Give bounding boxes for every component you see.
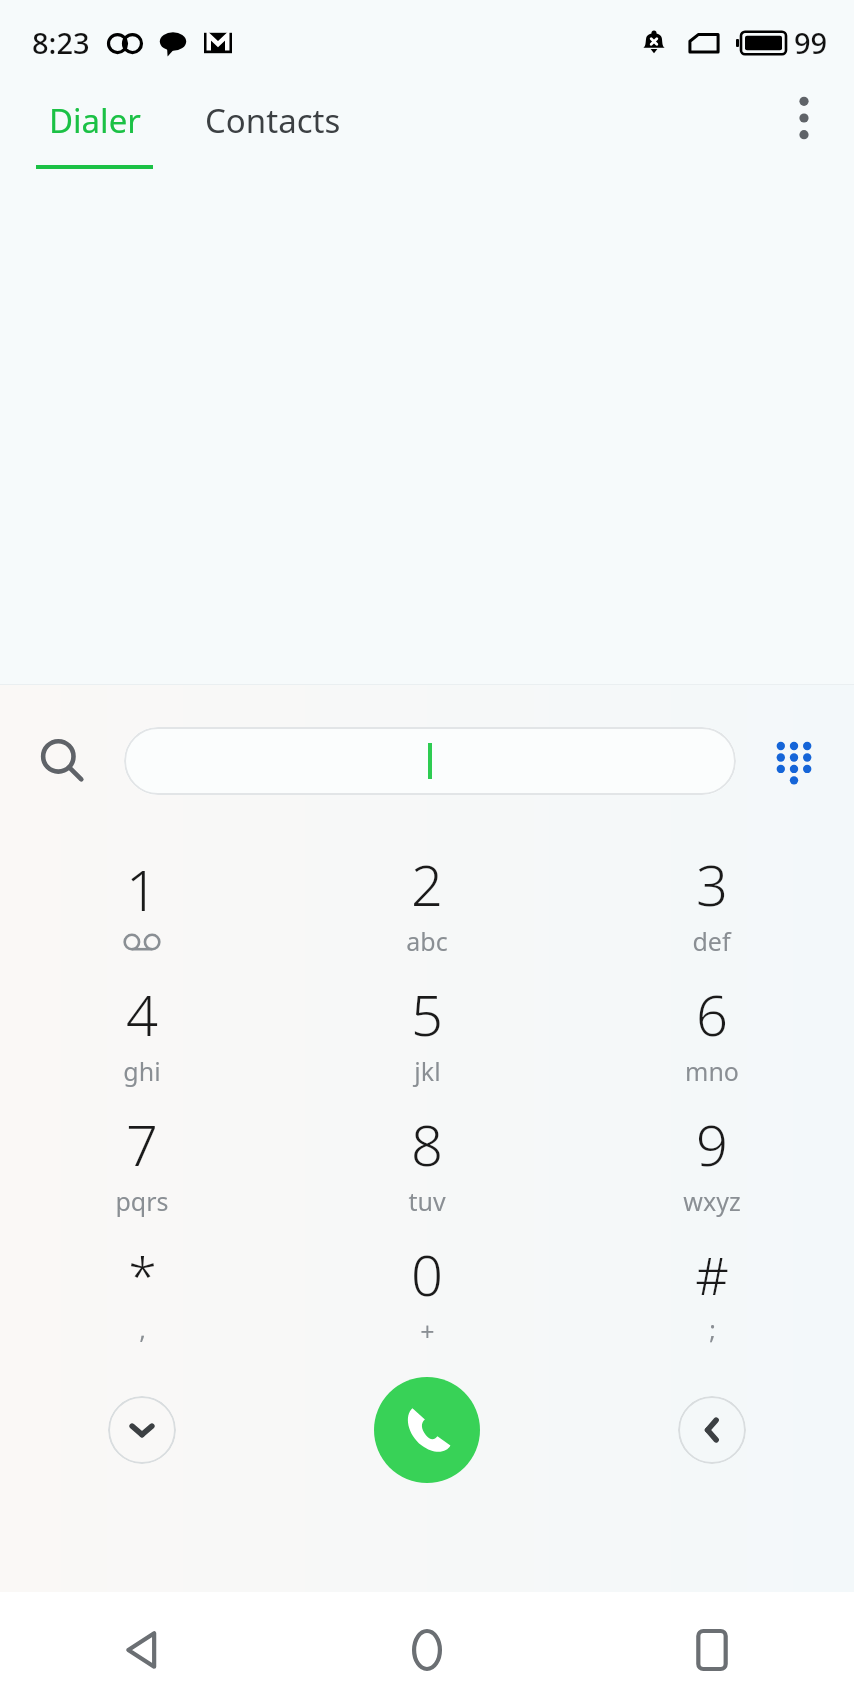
staticText: 0 — [411, 1236, 443, 1312]
button[interactable]: Home — [382, 1605, 472, 1695]
staticText: wxyz — [683, 1184, 741, 1218]
staticText: 4 — [126, 976, 158, 1052]
button[interactable]: 4 — [0, 967, 284, 1097]
button[interactable] — [124, 727, 736, 795]
button[interactable]: 6 — [569, 967, 854, 1097]
staticText: ghi — [123, 1054, 161, 1088]
staticText: pqrs — [115, 1184, 169, 1218]
staticText: 7 — [126, 1106, 158, 1182]
button[interactable]: * — [0, 1227, 284, 1357]
button[interactable]: More options — [776, 90, 832, 146]
button[interactable]: 7 — [0, 1097, 284, 1227]
button[interactable]: Search — [24, 723, 100, 799]
staticText: 8:23 — [32, 23, 90, 62]
staticText: def — [692, 924, 731, 958]
staticText: 1 — [126, 851, 158, 927]
button[interactable]: # — [569, 1227, 854, 1357]
button[interactable]: Backspace — [678, 1396, 746, 1464]
button[interactable]: 3 — [569, 837, 854, 967]
staticText: jkl — [414, 1054, 441, 1088]
button[interactable]: Call — [374, 1377, 480, 1483]
staticText: 9 — [696, 1106, 728, 1182]
staticText: mno — [685, 1054, 739, 1088]
button[interactable]: 8 — [284, 1097, 569, 1227]
staticText: 99 — [794, 23, 828, 62]
staticText: 5 — [411, 976, 443, 1052]
button[interactable]: Hide dialpad — [108, 1396, 176, 1464]
button[interactable]: Show dialpad — [756, 723, 832, 799]
staticText: abc — [406, 924, 448, 958]
button[interactable]: 9 — [569, 1097, 854, 1227]
staticText: * — [128, 1239, 157, 1310]
staticText: 3 — [696, 846, 728, 922]
button[interactable]: 5 — [284, 967, 569, 1097]
staticText: + — [420, 1314, 435, 1348]
staticText: ; — [709, 1312, 716, 1346]
staticText: 8 — [411, 1106, 443, 1182]
staticText: tuv — [408, 1184, 446, 1218]
button[interactable]: 1 — [0, 837, 284, 967]
staticText: 6 — [696, 976, 728, 1052]
staticText: 2 — [411, 846, 443, 922]
button[interactable]: Dialer — [36, 84, 153, 169]
button[interactable]: 2 — [284, 837, 569, 967]
staticText: , — [139, 1312, 146, 1346]
button[interactable]: 0 — [284, 1227, 569, 1357]
button[interactable]: Contacts — [205, 84, 341, 143]
staticText: Contacts — [205, 98, 341, 143]
staticText: # — [695, 1239, 729, 1310]
button[interactable]: Back — [97, 1605, 187, 1695]
staticText: Dialer — [49, 98, 141, 143]
button[interactable]: Recent apps — [667, 1605, 757, 1695]
